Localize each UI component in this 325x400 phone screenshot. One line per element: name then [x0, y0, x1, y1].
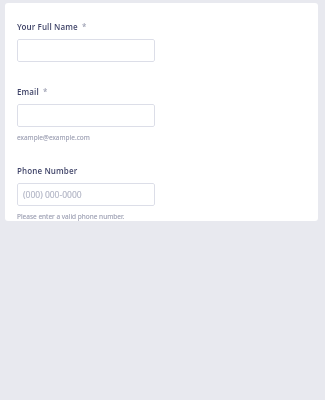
button[interactable]	[17, 39, 155, 62]
staticText: *	[82, 21, 87, 32]
button[interactable]	[17, 104, 155, 127]
staticText: (000) 000-0000	[23, 189, 82, 201]
staticText: Your Full Name	[17, 21, 78, 32]
button[interactable]: (000) 000-0000	[17, 183, 155, 206]
staticText: *	[43, 86, 48, 97]
staticText: Please enter a valid phone number.	[17, 212, 125, 221]
staticText: Phone Number	[17, 165, 78, 176]
staticText: Email	[17, 86, 39, 97]
staticText: example@example.com	[17, 133, 90, 142]
